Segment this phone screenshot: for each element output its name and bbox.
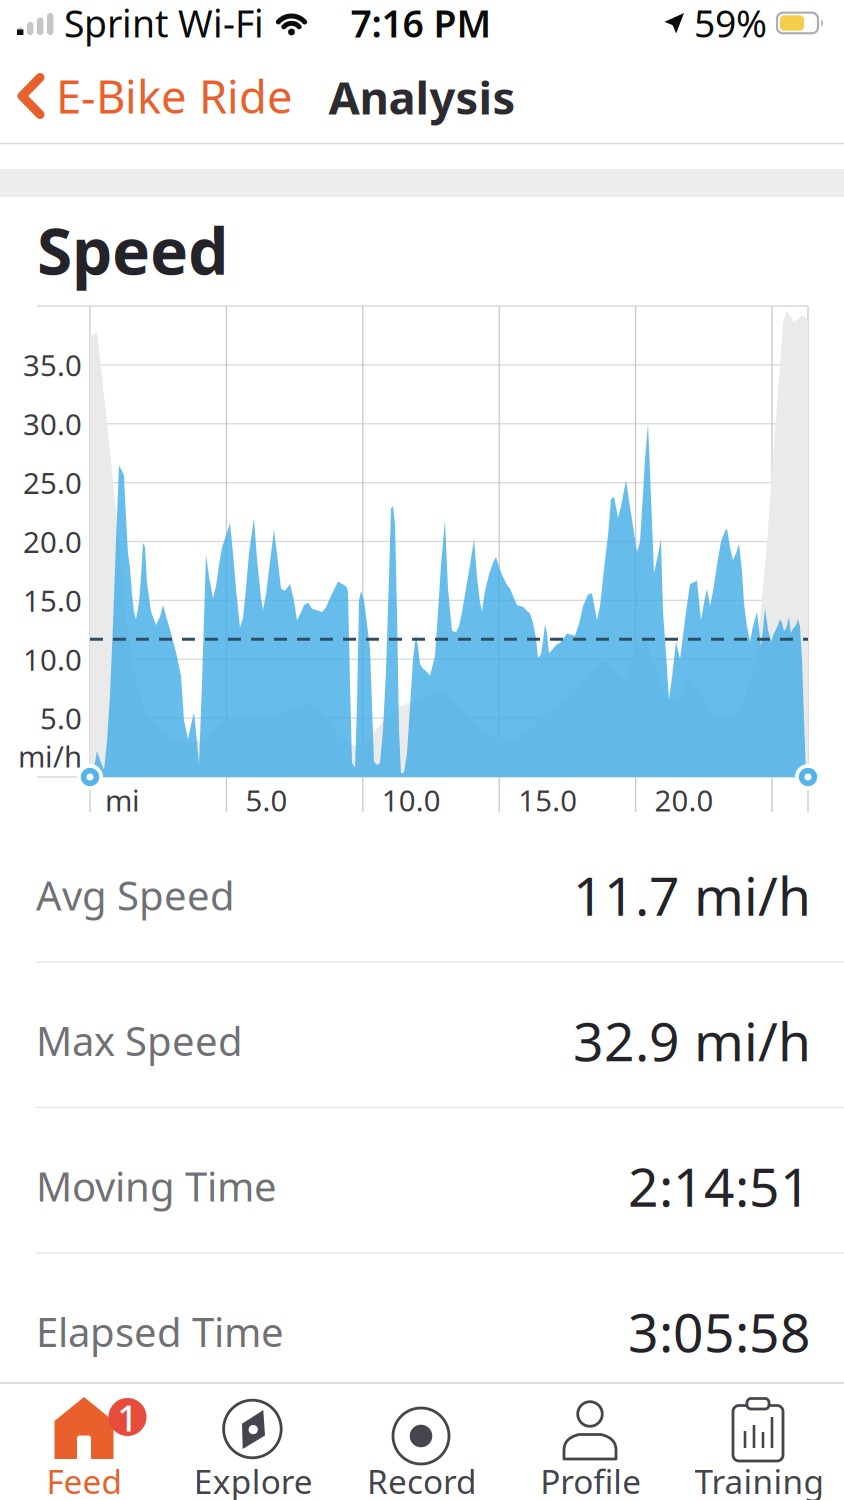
staticText: Speed <box>37 207 228 292</box>
staticText: Sprint Wi-Fi <box>64 0 264 48</box>
staticText: Analysis <box>328 67 515 127</box>
staticText: 11.7 mi/h <box>573 860 811 930</box>
staticText: Max Speed <box>36 1014 243 1067</box>
staticText: Record <box>367 1459 477 1500</box>
staticText: 2:14:51 <box>628 1151 811 1221</box>
staticText: Profile <box>540 1459 641 1500</box>
button[interactable]: Explore <box>169 1383 338 1500</box>
staticText: Explore <box>194 1459 313 1500</box>
staticText: 10.0 <box>23 640 82 679</box>
button[interactable]: Training <box>675 1383 844 1500</box>
staticText: 5.0 <box>40 699 82 738</box>
staticText: 30.0 <box>23 404 82 443</box>
staticText: 35.0 <box>23 345 82 384</box>
button[interactable]: Record <box>338 1383 506 1500</box>
staticText: Avg Speed <box>36 868 235 921</box>
staticText: Training <box>695 1459 825 1500</box>
staticText: 25.0 <box>23 463 82 502</box>
staticText: mi <box>105 780 140 819</box>
staticText: 59% <box>694 0 767 48</box>
staticText: E-Bike Ride <box>56 66 293 126</box>
staticText: 15.0 <box>518 780 577 819</box>
staticText: 10.0 <box>382 780 441 819</box>
staticText: Moving Time <box>36 1159 277 1212</box>
staticText: mi/h <box>18 736 82 775</box>
button[interactable]: Back <box>18 66 293 126</box>
staticText: 7:16 PM <box>350 0 491 48</box>
button[interactable]: Profile <box>506 1383 675 1500</box>
staticText: Elapsed Time <box>36 1305 284 1358</box>
button[interactable]: Feed <box>0 1383 169 1500</box>
staticText: 5.0 <box>245 780 287 819</box>
staticText: 32.9 mi/h <box>573 1005 811 1076</box>
staticText: Feed <box>46 1459 122 1500</box>
staticText: 15.0 <box>23 581 82 620</box>
staticText: 3:05:58 <box>628 1296 811 1367</box>
staticText: 20.0 <box>23 522 82 561</box>
staticText: 1 <box>117 1394 138 1441</box>
staticText: 20.0 <box>655 780 714 819</box>
